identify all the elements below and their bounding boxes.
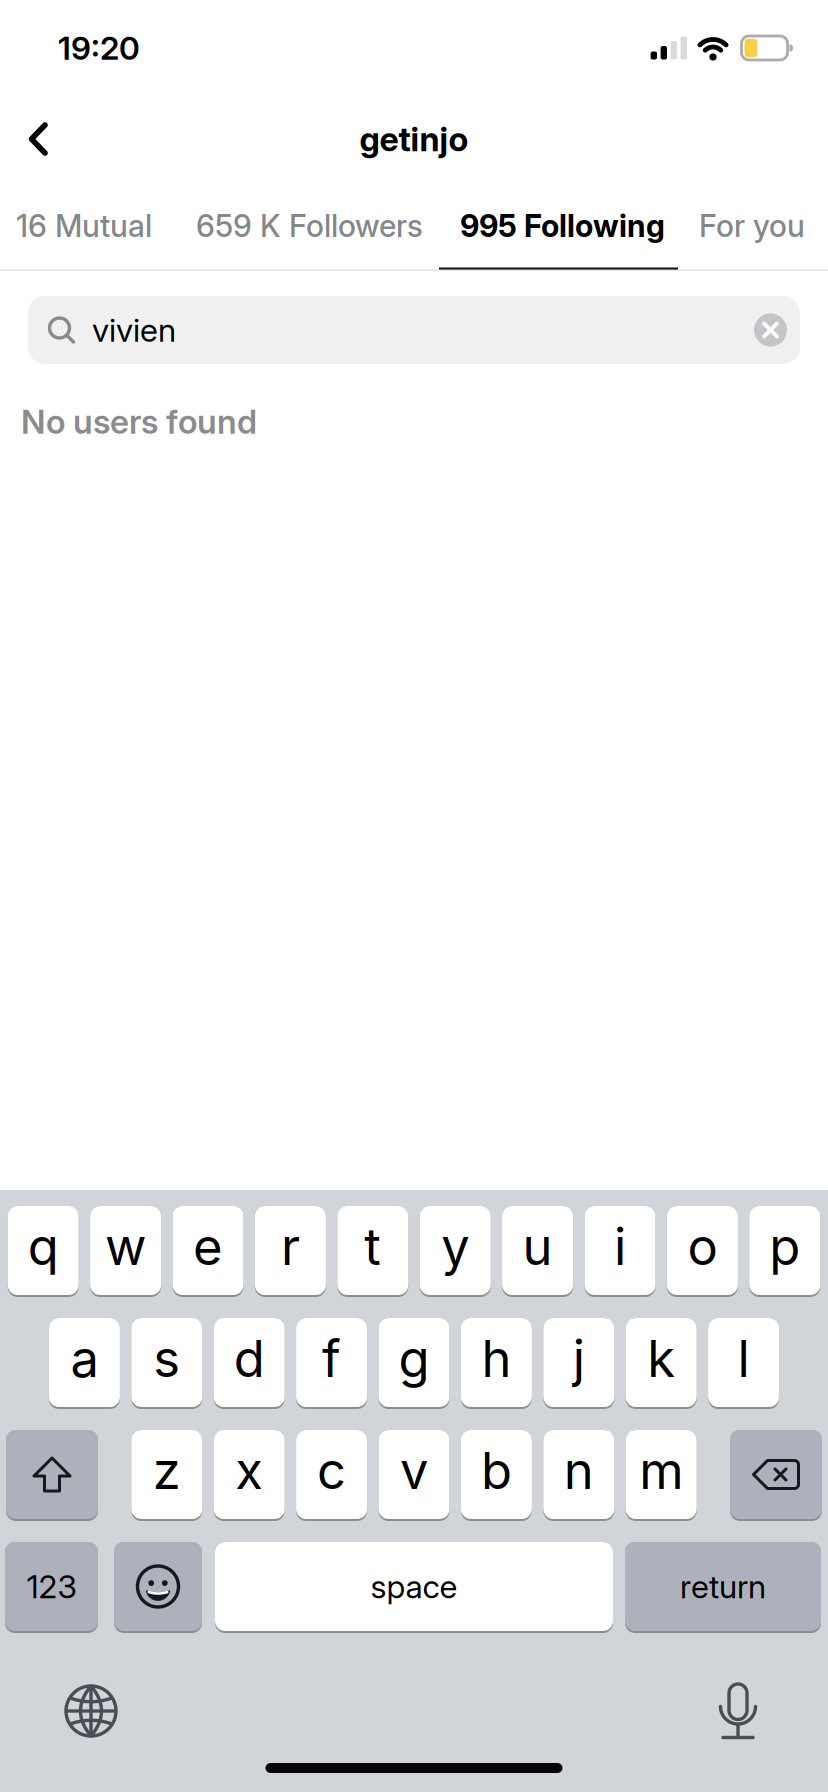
staticText: o [687, 1217, 717, 1276]
button[interactable]: Shift [6, 1430, 98, 1521]
button[interactable]: q [8, 1206, 79, 1297]
staticText: 19:20 [58, 29, 140, 67]
staticText: g [398, 1329, 429, 1388]
button[interactable]: v [378, 1430, 449, 1521]
staticText: m [639, 1441, 683, 1500]
staticText: v [400, 1441, 428, 1500]
button[interactable]: f [296, 1318, 367, 1409]
staticText: x [235, 1441, 263, 1500]
button[interactable]: d [214, 1318, 285, 1409]
staticText: e [193, 1217, 223, 1276]
button[interactable]: a [49, 1318, 120, 1409]
button[interactable]: u [502, 1206, 573, 1297]
button[interactable]: Dictate [718, 1682, 828, 1739]
button[interactable]: Back [0, 117, 72, 161]
button[interactable]: e [172, 1206, 243, 1297]
staticText: c [317, 1441, 346, 1500]
staticText: y [441, 1217, 469, 1276]
staticText: r [281, 1217, 300, 1276]
staticText: q [28, 1217, 59, 1276]
staticText: p [769, 1217, 800, 1276]
staticText: space [370, 1568, 457, 1605]
button[interactable]: i [584, 1206, 655, 1297]
button[interactable]: m [626, 1430, 697, 1521]
staticText: 123 [26, 1568, 76, 1605]
staticText: 659 K Followers [196, 208, 423, 244]
staticText: No users found [21, 402, 257, 441]
button[interactable]: t [337, 1206, 408, 1297]
staticText: s [153, 1329, 180, 1388]
button[interactable]: Numbers [5, 1542, 98, 1633]
staticText: n [564, 1441, 594, 1500]
staticText: d [234, 1329, 265, 1388]
button[interactable]: 995 Following [423, 208, 665, 244]
button[interactable]: Return [625, 1542, 821, 1633]
button[interactable]: z [131, 1430, 202, 1521]
button[interactable]: h [461, 1318, 532, 1409]
staticText: getinjo [359, 119, 468, 159]
button[interactable]: Next keyboard [0, 1684, 118, 1738]
staticText: z [153, 1441, 181, 1500]
staticText: k [647, 1329, 675, 1388]
staticText: b [481, 1441, 512, 1500]
staticText: i [614, 1217, 626, 1276]
button[interactable]: b [461, 1430, 532, 1521]
button[interactable]: p [749, 1206, 820, 1297]
staticText: j [573, 1329, 585, 1388]
staticText: vivien [92, 311, 176, 349]
staticText: l [738, 1329, 750, 1388]
staticText: 16 Mutual [16, 208, 152, 244]
button[interactable]: x [214, 1430, 285, 1521]
button[interactable]: g [378, 1318, 449, 1409]
button[interactable]: w [90, 1206, 161, 1297]
staticText: 995 Following [460, 208, 665, 244]
button[interactable]: Clear text [754, 313, 800, 346]
staticText: a [70, 1329, 98, 1388]
button[interactable]: 659 K Followers [152, 208, 423, 244]
button[interactable]: o [667, 1206, 738, 1297]
button[interactable]: j [543, 1318, 614, 1409]
staticText: f [322, 1329, 341, 1388]
button[interactable]: l [708, 1318, 779, 1409]
button[interactable]: For you [665, 208, 805, 244]
button[interactable]: space [215, 1542, 613, 1633]
staticText: t [364, 1217, 381, 1276]
staticText: h [481, 1329, 511, 1388]
button[interactable]: n [543, 1430, 614, 1521]
button[interactable]: y [420, 1206, 491, 1297]
button[interactable]: Delete [730, 1430, 822, 1521]
staticText: For you [699, 208, 805, 244]
button[interactable]: Emoji [114, 1542, 202, 1633]
button[interactable]: s [131, 1318, 202, 1409]
staticText: w [105, 1217, 146, 1276]
button[interactable]: k [626, 1318, 697, 1409]
button[interactable]: 16 Mutual [16, 208, 152, 244]
staticText: u [523, 1217, 553, 1276]
staticText: return [680, 1568, 766, 1605]
button[interactable]: r [255, 1206, 326, 1297]
button[interactable]: c [296, 1430, 367, 1521]
